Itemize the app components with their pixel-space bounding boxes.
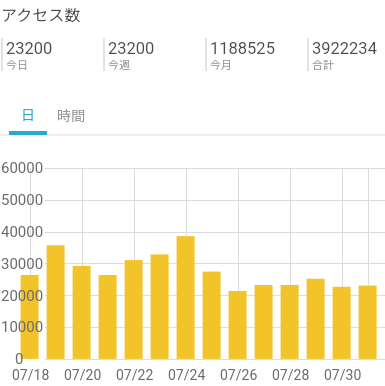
staticText: 07/26 (220, 367, 258, 383)
staticText: 20000 (1, 287, 44, 305)
button[interactable]: 3922234 (306, 0, 385, 100)
button[interactable]: 23200 (0, 0, 102, 100)
staticText: 今日 (6, 56, 28, 72)
button[interactable]: 時間 (49, 103, 94, 135)
staticText: 40000 (1, 223, 44, 241)
staticText: 1188525 (210, 39, 275, 58)
staticText: 07/30 (324, 367, 362, 383)
staticText: 今週 (108, 56, 130, 72)
staticText: 23200 (6, 39, 53, 58)
staticText: 10000 (1, 318, 44, 336)
staticText: 07/28 (272, 367, 310, 383)
staticText: 23200 (108, 39, 155, 58)
staticText: 0 (15, 350, 24, 368)
staticText: 3922234 (312, 39, 377, 58)
button[interactable]: 23200 (102, 0, 204, 100)
staticText: 50000 (1, 191, 44, 209)
button[interactable]: 1188525 (204, 0, 306, 100)
button[interactable]: 日 (9, 103, 47, 135)
staticText: 今月 (210, 56, 232, 72)
staticText: 07/20 (64, 367, 102, 383)
staticText: 60000 (1, 159, 44, 177)
staticText: 時間 (57, 105, 85, 125)
staticText: アクセス数 (1, 2, 81, 25)
staticText: 合計 (312, 56, 334, 72)
staticText: 30000 (1, 255, 44, 273)
staticText: 日 (21, 104, 35, 124)
staticText: 07/18 (12, 367, 50, 383)
staticText: 07/22 (116, 367, 154, 383)
staticText: 07/24 (168, 367, 206, 383)
